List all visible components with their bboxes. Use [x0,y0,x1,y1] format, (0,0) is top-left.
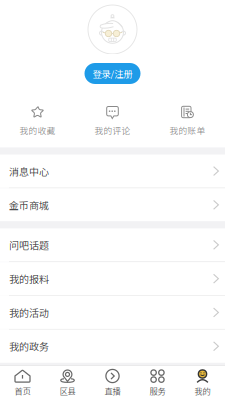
staticText: 问吧话题 [9,238,49,252]
staticText: 我的政务 [9,339,49,353]
staticText: 登录/注册 [92,67,132,80]
button[interactable]: 问吧话题 [0,228,225,261]
staticText: 直播 [104,385,120,397]
staticText: 我的评论 [94,124,130,136]
button[interactable]: 首页 [0,366,45,400]
staticText: 我的收藏 [19,124,55,136]
button[interactable]: 我的评论 [75,105,150,136]
staticText: 服务 [149,385,165,397]
button[interactable]: 我的收藏 [0,105,75,136]
button[interactable]: 区县 [45,366,90,400]
button[interactable]: 消息中心 [0,154,225,187]
staticText: 我的报料 [9,271,49,286]
staticText: 消息中心 [9,164,49,178]
button[interactable]: 我的政务 [0,330,225,363]
button[interactable]: 直播 [90,366,135,400]
staticText: 我的活动 [9,305,49,320]
staticText: 我的 [194,385,210,397]
button[interactable]: 我的报料 [0,262,225,295]
staticText: 我的账单 [169,124,205,136]
button[interactable]: 登录/注册 [84,63,140,84]
button[interactable]: 金币商城 [0,188,225,221]
staticText: 金币商城 [9,198,49,212]
button[interactable]: 我的活动 [0,296,225,329]
button[interactable]: 我的账单 [150,105,225,136]
button[interactable]: 服务 [135,366,180,400]
button[interactable]: 我的 [180,366,225,400]
staticText: 区县 [59,385,75,397]
staticText: 首页 [14,385,30,397]
